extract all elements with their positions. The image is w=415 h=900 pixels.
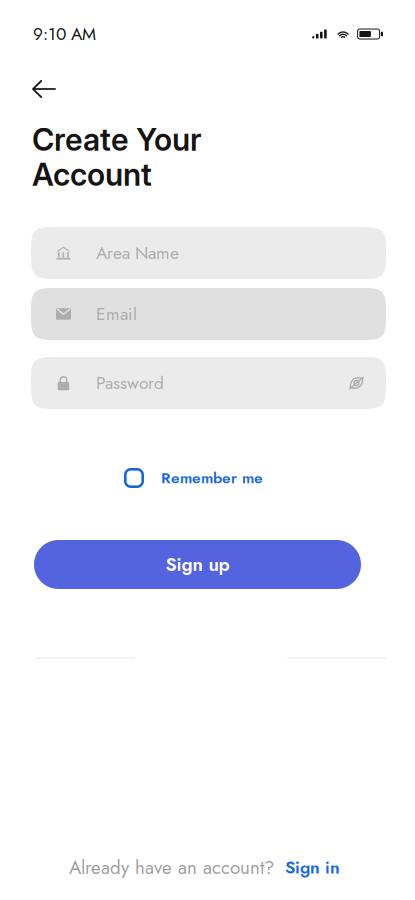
staticText: 9:10 AM xyxy=(33,21,96,46)
button[interactable]: Back xyxy=(32,70,78,108)
staticText: Sign up xyxy=(165,551,229,578)
button[interactable]: Sign in xyxy=(285,855,340,880)
staticText: Email xyxy=(96,301,137,326)
staticText: Password xyxy=(96,370,164,395)
staticText: Sign in xyxy=(285,855,340,880)
button[interactable]: Sign up xyxy=(34,540,361,589)
staticText: Account xyxy=(32,156,152,193)
staticText: Create Your xyxy=(32,121,202,158)
staticText: Remember me xyxy=(161,467,263,489)
button[interactable]: Remember me xyxy=(124,463,263,493)
staticText: Already have an account? xyxy=(69,854,274,881)
staticText: Area Name xyxy=(96,240,179,265)
